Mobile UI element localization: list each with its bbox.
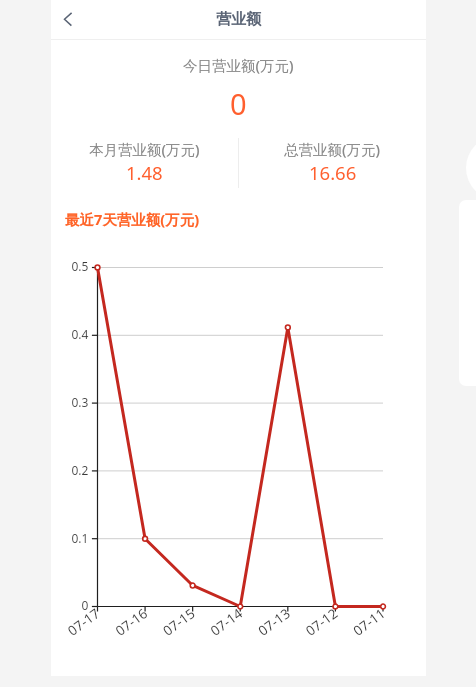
staticText: 0 [230, 84, 247, 116]
staticText: 本月营业额(万元) [89, 139, 200, 159]
staticText: 今日营业额(万元) [183, 55, 294, 75]
button[interactable]: Messages [466, 136, 476, 200]
staticText: 总营业额(万元) [284, 139, 381, 159]
staticText: 最近7天营业额(万元) [65, 209, 200, 229]
staticText: 营业额 [216, 10, 261, 29]
staticText: 16.66 [309, 160, 357, 182]
button[interactable]: Back [51, 0, 97, 39]
staticText: 1.48 [126, 160, 163, 182]
button[interactable]: 总营业额(万元) [239, 139, 426, 159]
button[interactable]: 本月营业额(万元) [51, 139, 238, 159]
